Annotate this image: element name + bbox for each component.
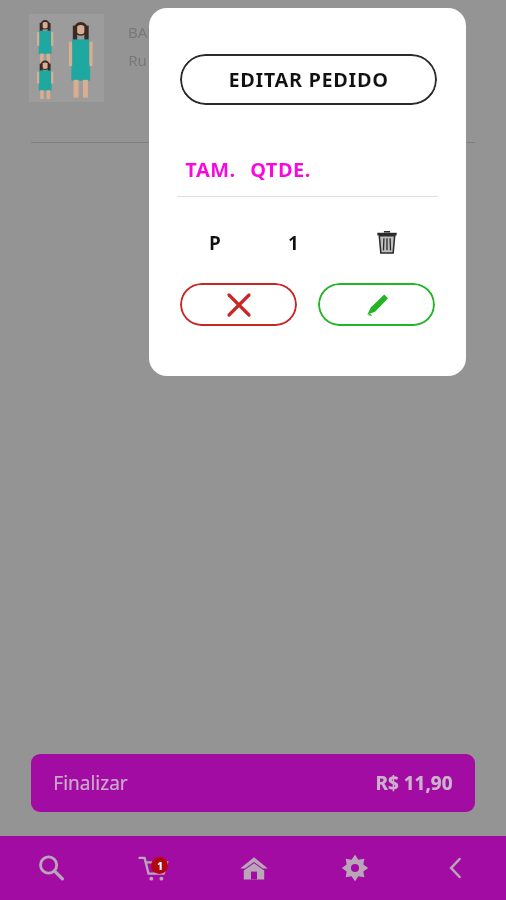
staticText: EDITAR PEDIDO	[228, 66, 389, 93]
button[interactable]: Excluir item	[371, 226, 403, 258]
button[interactable]: Buscar	[0, 836, 102, 900]
staticText: P	[209, 230, 221, 254]
button[interactable]: Editar	[318, 283, 435, 326]
button[interactable]: Finalizar	[31, 754, 475, 812]
staticText: 1	[288, 230, 299, 254]
staticText: 1	[157, 859, 163, 873]
button[interactable]: EDITAR PEDIDO	[180, 54, 437, 105]
staticText: Ru	[128, 50, 147, 70]
staticText: QTDE.	[250, 156, 311, 183]
button[interactable]: Configurações	[304, 836, 405, 900]
button[interactable]: Carrinho, 1 item	[102, 836, 203, 900]
button[interactable]: Cancelar	[180, 283, 297, 326]
staticText: TAM.	[185, 156, 236, 183]
staticText: R$ 11,90	[375, 770, 453, 796]
staticText: BABYDOLL	[128, 22, 204, 42]
button[interactable]: Início	[203, 836, 304, 900]
staticText: Finalizar	[53, 770, 128, 796]
button[interactable]: Voltar	[405, 836, 506, 900]
